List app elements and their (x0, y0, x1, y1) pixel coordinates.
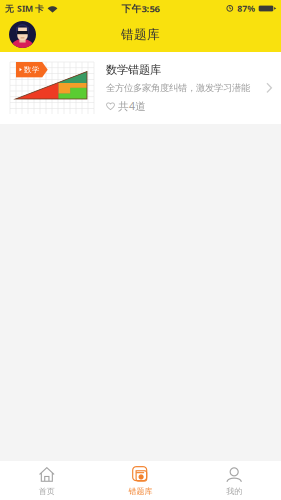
staticText: 87% (237, 3, 255, 14)
button[interactable]: 首页 (0, 460, 94, 500)
button[interactable]: 我的 (187, 460, 281, 500)
staticText: 全方位多家角度纠错，激发学习潜能 (106, 82, 250, 94)
staticText: 无 SIM 卡 (5, 3, 44, 14)
staticText: 首页 (39, 486, 55, 496)
button[interactable]: 数学 (0, 52, 281, 124)
button[interactable]: 错题库 (94, 460, 187, 500)
staticText: 数学 (24, 65, 40, 74)
staticText: 错题库 (128, 486, 152, 496)
staticText: 下午3:56 (121, 2, 159, 15)
staticText: 数学错题库 (106, 63, 161, 77)
staticText: 错题库 (121, 26, 160, 42)
staticText: 我的 (226, 486, 242, 496)
staticText: 共4道 (118, 99, 146, 113)
button[interactable]: Profile (9, 21, 36, 48)
